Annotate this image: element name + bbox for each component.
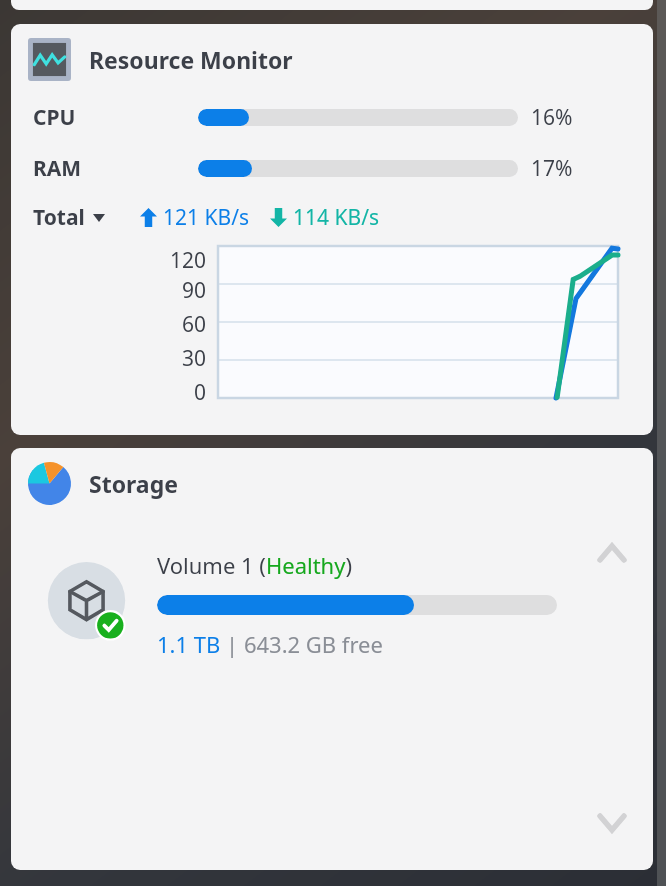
button[interactable]: Resource Monitor — [11, 24, 653, 81]
button[interactable]: Volume 1 (Healthy) — [11, 550, 653, 659]
staticText: 121 KB/s — [163, 203, 250, 232]
button[interactable]: Total — [33, 203, 105, 232]
staticText: 90 — [182, 276, 207, 305]
staticText: 17% — [531, 154, 573, 183]
button[interactable]: Storage — [11, 448, 653, 505]
staticText: 120 — [170, 246, 207, 275]
staticText: CPU — [33, 103, 76, 132]
staticText: Volume 1 (Healthy) — [157, 550, 353, 580]
staticText: Resource Monitor — [89, 44, 293, 75]
staticText: 30 — [182, 344, 207, 373]
staticText: 16% — [531, 103, 573, 132]
staticText: 114 KB/s — [293, 203, 380, 232]
staticText: 1.1 TB | 643.2 GB free — [157, 629, 383, 659]
staticText: 60 — [182, 310, 207, 339]
button[interactable]: Scroll down — [595, 806, 629, 840]
staticText: Storage — [89, 468, 178, 499]
staticText: Total — [33, 203, 85, 232]
staticText: 0 — [194, 378, 207, 407]
button[interactable]: Scroll up — [595, 536, 629, 570]
staticText: RAM — [33, 154, 82, 183]
